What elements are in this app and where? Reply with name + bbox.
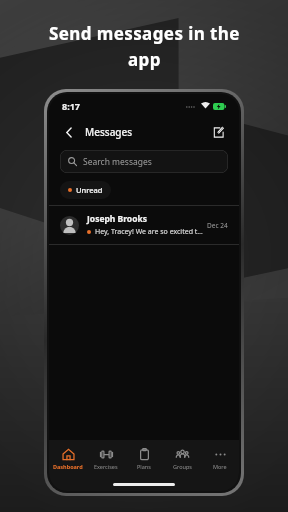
staticText: Unread <box>76 185 103 195</box>
staticText: Hey, Tracey! We are so excited that y... <box>95 227 203 237</box>
staticText: Send messages in the <box>49 22 240 45</box>
staticText: Groups <box>173 463 192 470</box>
staticText: app <box>128 48 161 71</box>
staticText: Search messages <box>83 156 152 168</box>
button[interactable]: Groups <box>163 445 201 473</box>
staticText: Exercises <box>94 463 118 470</box>
staticText: Messages <box>85 125 133 139</box>
button[interactable]: Joseph Brooks <box>49 206 239 244</box>
button[interactable]: Back <box>59 122 79 142</box>
button[interactable]: Search messages <box>60 150 228 173</box>
staticText: Dec 24 <box>207 221 228 230</box>
button[interactable]: Dashboard <box>49 445 87 473</box>
button[interactable]: Exercises <box>87 445 125 473</box>
staticText: Dashboard <box>53 463 83 470</box>
button[interactable]: Unread <box>60 181 111 199</box>
button[interactable]: Compose message <box>207 121 229 143</box>
staticText: Joseph Brooks <box>87 213 148 225</box>
staticText: Plans <box>137 463 151 470</box>
button[interactable]: Plans <box>125 445 163 473</box>
button[interactable]: More <box>201 445 239 473</box>
staticText: More <box>213 463 227 470</box>
staticText: 8:17 <box>62 100 80 112</box>
